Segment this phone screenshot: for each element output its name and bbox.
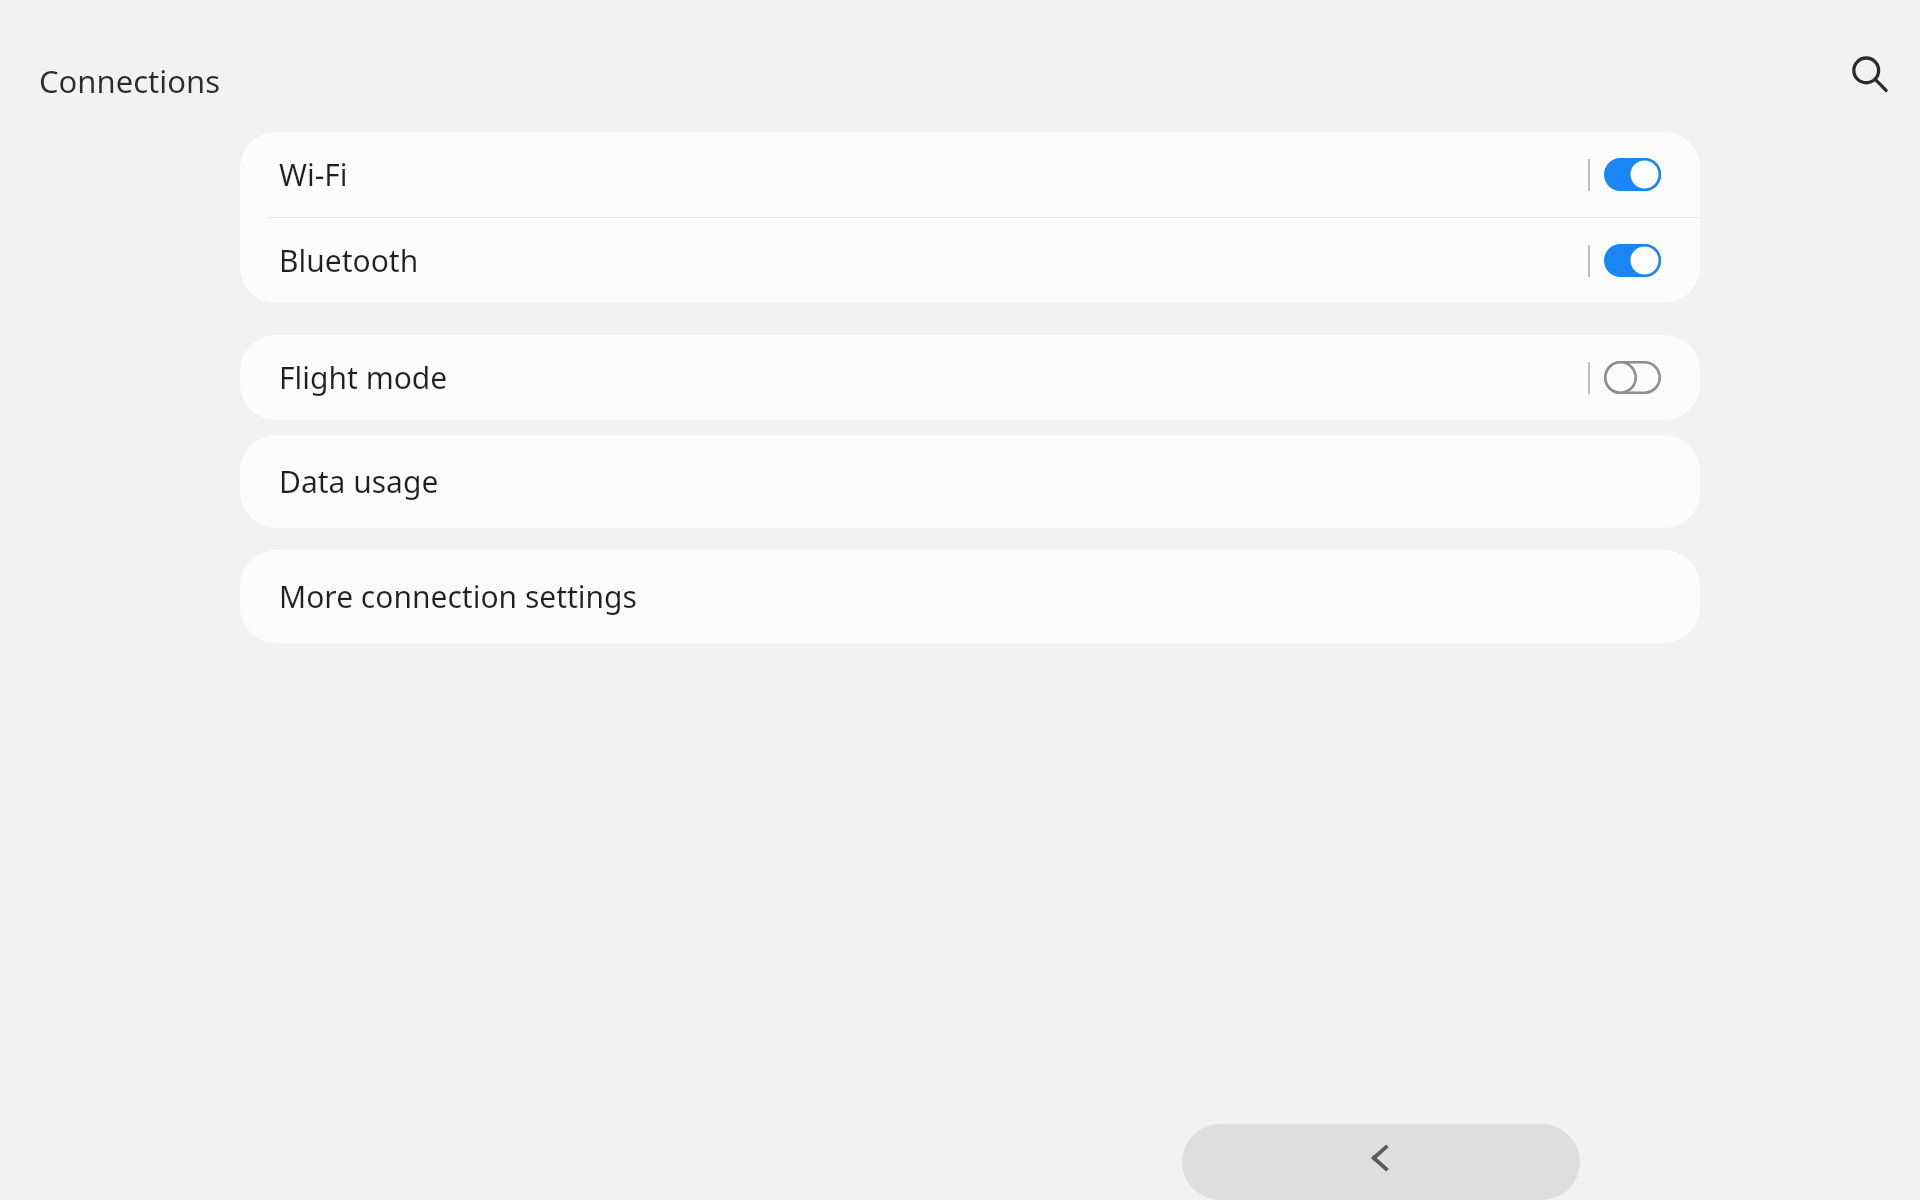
- button[interactable]: On: [1604, 158, 1661, 191]
- staticText: More connection settings: [279, 576, 637, 617]
- staticText: Flight mode: [279, 357, 1588, 398]
- button[interactable]: Back: [1182, 1124, 1580, 1200]
- button[interactable]: Flight mode: [240, 335, 1700, 420]
- staticText: Data usage: [279, 461, 439, 502]
- button[interactable]: Off: [1604, 361, 1661, 394]
- staticText: Wi-Fi: [279, 154, 1588, 195]
- button[interactable]: Search: [1840, 45, 1900, 105]
- staticText: Bluetooth: [279, 240, 1588, 281]
- button[interactable]: More connection settings: [240, 550, 1700, 643]
- button[interactable]: Wi-Fi: [240, 132, 1700, 217]
- button[interactable]: Bluetooth: [240, 218, 1700, 303]
- staticText: Connections: [39, 60, 220, 102]
- button[interactable]: On: [1604, 244, 1661, 277]
- button[interactable]: Data usage: [240, 435, 1700, 528]
